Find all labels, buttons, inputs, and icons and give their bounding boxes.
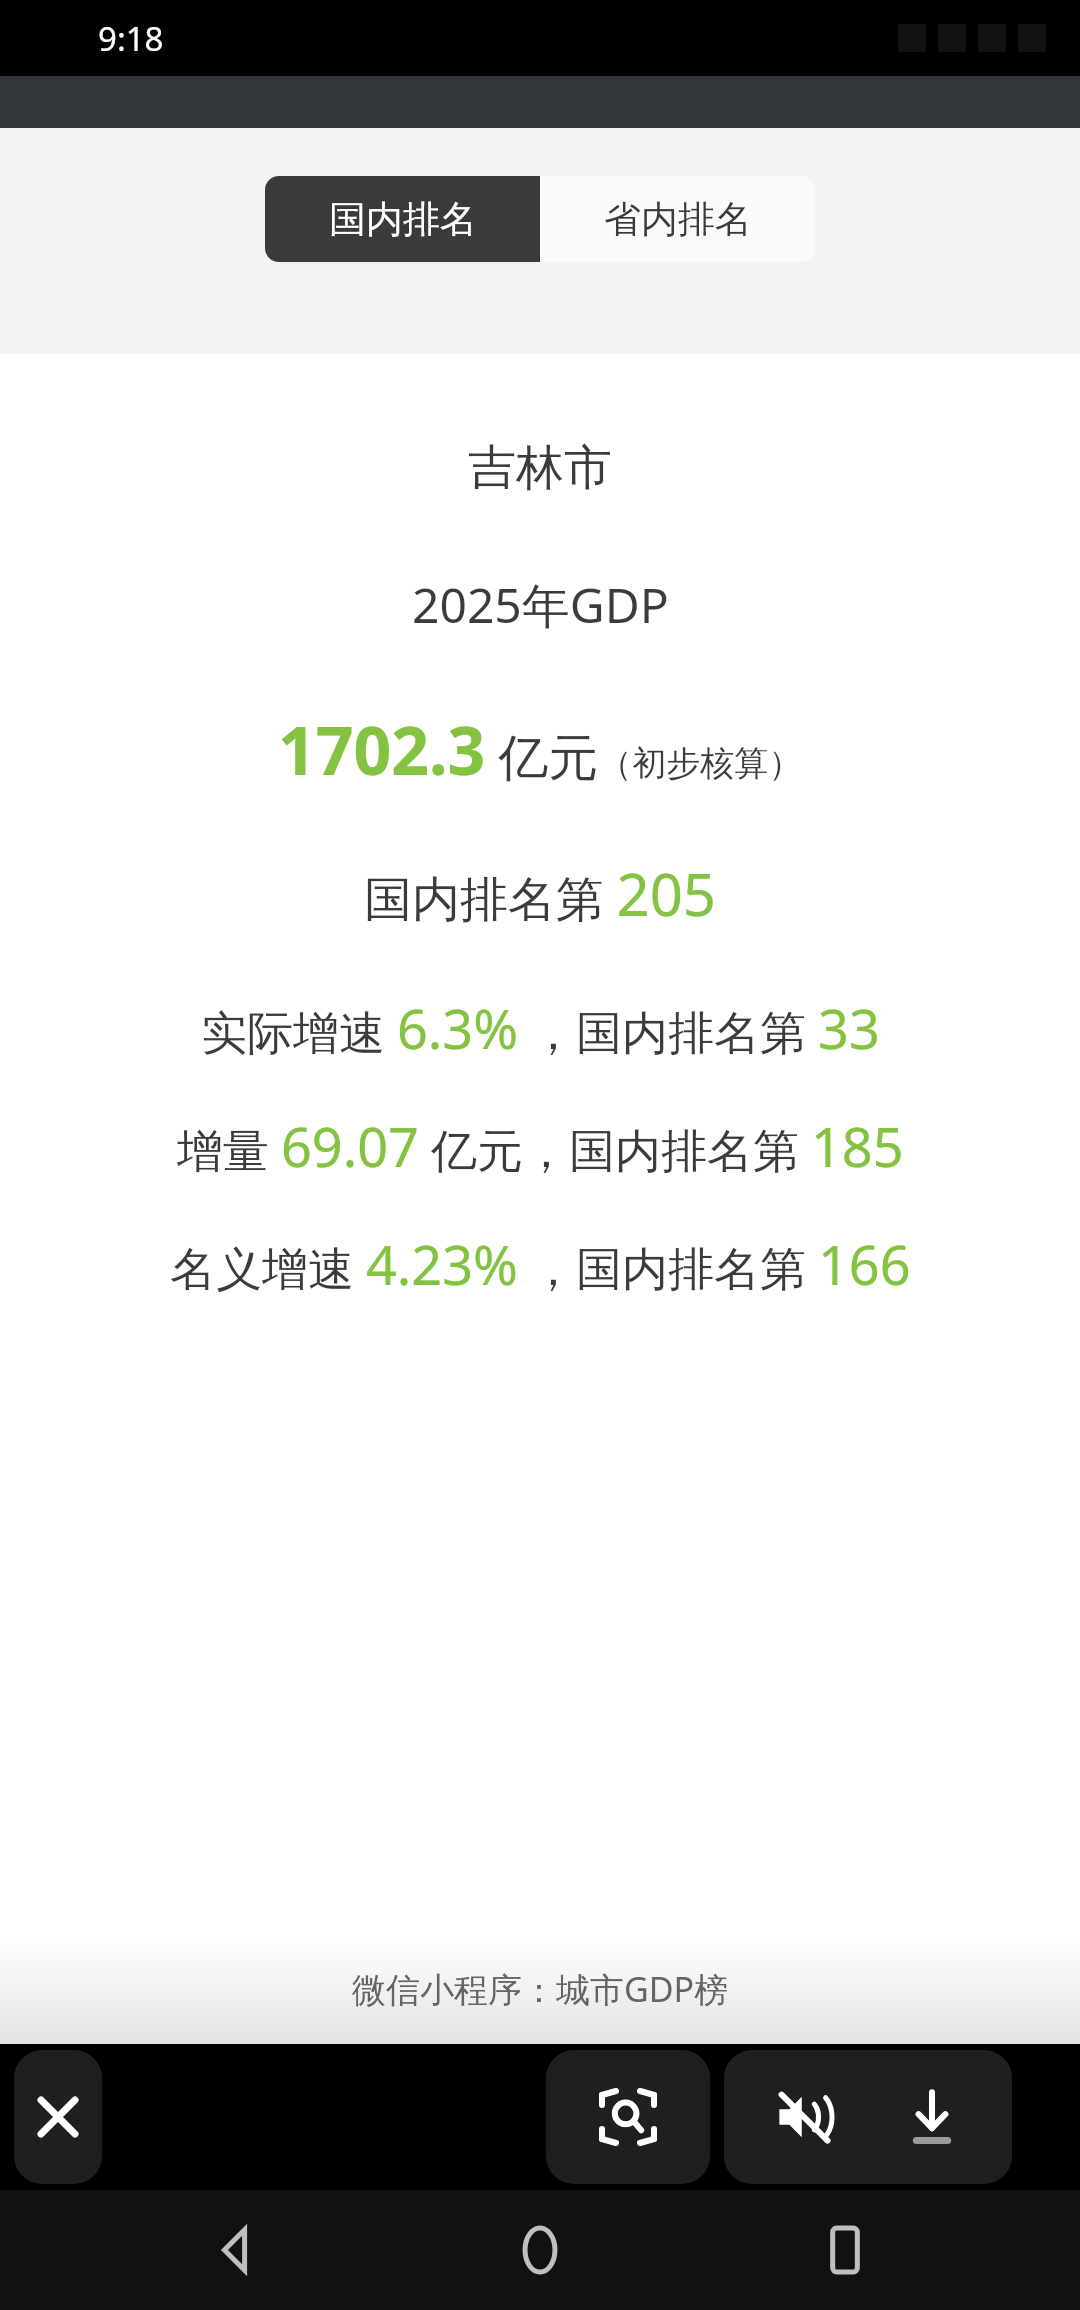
button[interactable]: Home <box>470 2190 610 2310</box>
button[interactable]: Close <box>14 2050 102 2184</box>
button[interactable]: Lens search <box>546 2050 710 2184</box>
staticText: 9:18 <box>98 16 164 61</box>
staticText: 名义增速 4.23% ，国内排名第 166 <box>170 1227 911 1301</box>
staticText: 国内排名 <box>329 196 477 243</box>
staticText: 1702.3 亿元（初步核算） <box>278 704 803 794</box>
button[interactable]: Back <box>165 2190 305 2310</box>
button[interactable]: Unmute <box>756 2069 852 2165</box>
staticText: 省内排名 <box>604 196 752 243</box>
staticText: 吉林市 <box>468 438 612 498</box>
staticText: 国内排名第 205 <box>364 854 717 933</box>
staticText: 实际增速 6.3% ，国内排名第 33 <box>201 991 880 1065</box>
button[interactable]: Download <box>884 2069 980 2165</box>
button[interactable]: Recents <box>775 2190 915 2310</box>
staticText: 2025年GDP <box>412 572 669 638</box>
button[interactable]: 国内排名 <box>265 176 540 262</box>
staticText: 微信小程序：城市GDP榜 <box>352 1966 729 2012</box>
staticText: 增量 69.07 亿元，国内排名第 185 <box>177 1109 904 1183</box>
button[interactable]: 省内排名 <box>540 176 815 262</box>
